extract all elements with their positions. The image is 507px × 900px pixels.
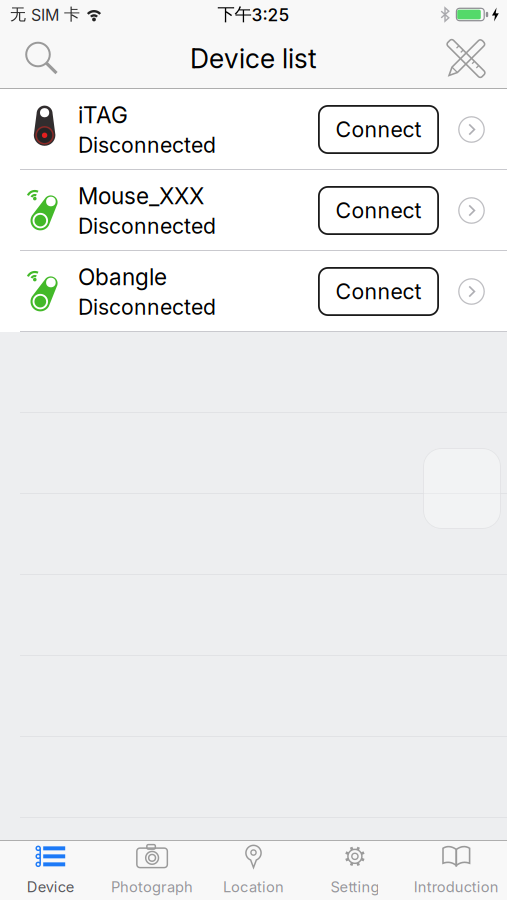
staticText: Introduction bbox=[414, 878, 499, 896]
staticText: 下午3:25 bbox=[217, 4, 289, 25]
staticText: Mouse_XXX bbox=[78, 182, 204, 209]
staticText: iTAG bbox=[78, 101, 128, 128]
button[interactable]: Details bbox=[439, 116, 507, 143]
button[interactable]: Connect bbox=[318, 105, 439, 154]
button[interactable]: Introduction bbox=[406, 841, 507, 900]
staticText: Disconnected bbox=[78, 294, 216, 319]
button[interactable]: Device bbox=[0, 841, 101, 900]
staticText: Photograph bbox=[111, 878, 193, 896]
staticText: Connect bbox=[335, 279, 421, 304]
staticText: Obangle bbox=[78, 263, 167, 290]
staticText: Location bbox=[223, 878, 284, 896]
staticText: Connect bbox=[335, 198, 421, 223]
staticText: Disconnected bbox=[78, 132, 216, 157]
button[interactable]: Photograph bbox=[101, 841, 203, 900]
staticText: Device list bbox=[190, 43, 317, 74]
button[interactable]: Location bbox=[203, 841, 304, 900]
staticText: 无 SIM 卡 bbox=[10, 5, 80, 24]
button[interactable]: Details bbox=[439, 197, 507, 224]
button[interactable]: Edit bbox=[446, 38, 507, 78]
staticText: Connect bbox=[335, 117, 421, 142]
button[interactable]: Details bbox=[439, 278, 507, 305]
button[interactable]: Connect bbox=[318, 186, 439, 235]
staticText: Setting bbox=[330, 878, 379, 896]
staticText: Device bbox=[27, 878, 75, 896]
button[interactable]: Setting bbox=[304, 841, 406, 900]
button[interactable]: Search bbox=[0, 39, 60, 77]
button[interactable]: Connect bbox=[318, 267, 439, 316]
staticText: Disconnected bbox=[78, 213, 216, 238]
